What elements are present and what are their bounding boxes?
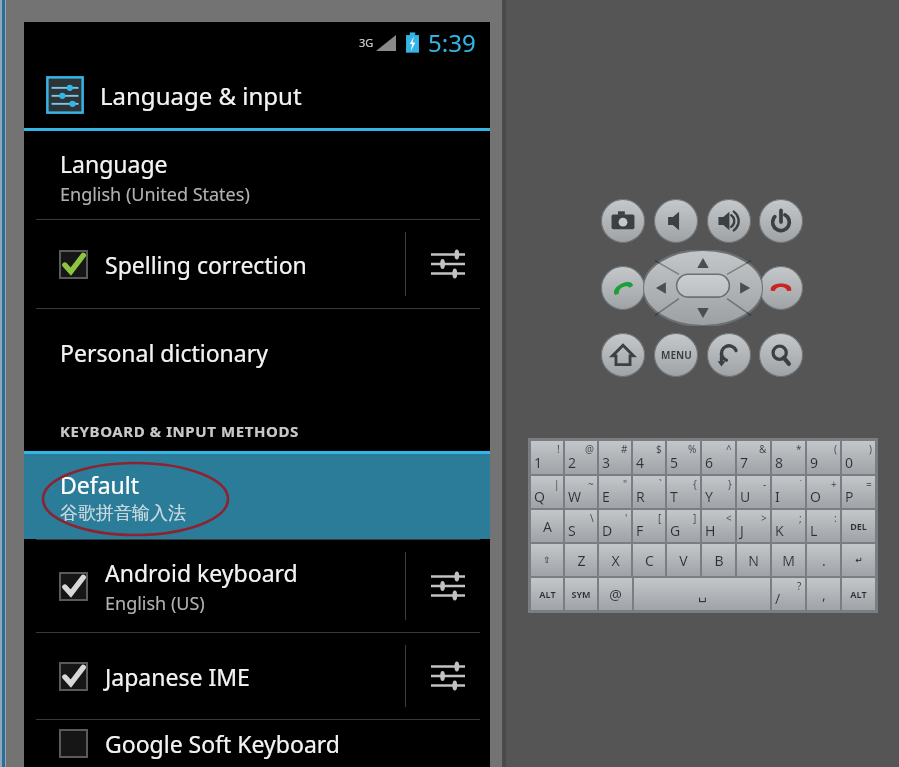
button[interactable]: Japanese IME — [24, 633, 490, 719]
button[interactable]: 9 — [807, 441, 840, 474]
staticText: ' — [625, 511, 628, 525]
button[interactable]: N — [737, 544, 770, 576]
staticText: | — [554, 477, 560, 491]
button[interactable]: D-pad — [643, 250, 763, 326]
button[interactable]: 4 — [633, 441, 665, 474]
button[interactable]: K — [772, 510, 805, 542]
staticText: X — [611, 551, 620, 570]
button[interactable]: , — [807, 578, 840, 610]
button[interactable]: U — [737, 476, 770, 508]
button[interactable]: Volume down — [654, 199, 698, 243]
button[interactable]: SYM — [565, 578, 597, 610]
button[interactable]: M — [772, 544, 805, 576]
staticText: DEL — [850, 520, 867, 532]
button[interactable]: 2 — [565, 441, 597, 474]
button[interactable]: 8 — [772, 441, 805, 474]
staticText: O — [810, 487, 821, 506]
button[interactable]: Settings for Japanese IME — [406, 633, 490, 719]
button[interactable]: T — [667, 476, 700, 508]
button[interactable]: 0 — [842, 441, 875, 474]
staticText: \ — [590, 511, 594, 525]
button[interactable]: E — [599, 476, 631, 508]
button[interactable]: Camera — [601, 199, 645, 243]
staticText: } — [728, 477, 732, 491]
button[interactable]: . — [807, 544, 840, 576]
button[interactable]: End call — [759, 266, 803, 310]
staticText: ˙ — [800, 477, 802, 491]
staticText: S — [568, 521, 576, 540]
staticText: E — [602, 487, 610, 506]
button[interactable]: D — [599, 510, 631, 542]
button[interactable]: Volume up — [707, 199, 751, 243]
button[interactable]: Back — [707, 333, 751, 377]
button[interactable]: W — [565, 476, 597, 508]
staticText: : — [834, 511, 837, 525]
staticText: 谷歌拼音输入法 — [60, 502, 186, 525]
staticText: ␣ — [698, 586, 707, 602]
button[interactable]: G — [667, 510, 700, 542]
button[interactable]: Google Soft Keyboard — [24, 720, 490, 767]
button[interactable]: I — [772, 476, 805, 508]
button[interactable]: Power — [759, 199, 803, 243]
staticText: @ — [609, 585, 622, 604]
button[interactable]: 3 — [599, 441, 631, 474]
staticText: # — [621, 442, 628, 456]
staticText: ) — [869, 442, 872, 456]
staticText: L — [810, 521, 818, 540]
staticText: ] — [693, 511, 697, 525]
staticText: KEYBOARD & INPUT METHODS — [60, 421, 299, 441]
button[interactable]: 1 — [531, 441, 563, 474]
button[interactable]: F — [633, 510, 665, 542]
button[interactable]: C — [633, 544, 665, 576]
button[interactable]: ⇧ — [531, 544, 563, 576]
staticText: J — [740, 521, 744, 540]
button[interactable]: L — [807, 510, 840, 542]
staticText: Spelling correction — [105, 249, 307, 280]
staticText: H — [705, 521, 716, 540]
button[interactable]: S — [565, 510, 597, 542]
staticText: ⇧ — [543, 555, 551, 565]
button[interactable]: ␣ — [634, 578, 770, 610]
button[interactable]: Q — [531, 476, 563, 508]
staticText: < — [726, 511, 732, 525]
button[interactable]: Spelling correction — [24, 220, 490, 308]
button[interactable]: B — [702, 544, 735, 576]
button[interactable]: ALT — [842, 578, 875, 610]
button[interactable]: Search — [759, 333, 803, 377]
button[interactable]: @ — [599, 578, 632, 610]
button[interactable]: X — [599, 544, 631, 576]
button[interactable]: Settings for Android keyboard — [406, 540, 490, 632]
staticText: K — [775, 521, 784, 540]
button[interactable]: Call — [601, 266, 645, 310]
button[interactable]: ALT — [531, 578, 563, 610]
button[interactable]: Default — [24, 454, 490, 539]
staticText: F — [636, 521, 644, 540]
button[interactable]: DEL — [842, 510, 875, 542]
staticText: Android keyboard — [105, 557, 298, 588]
staticText: English (US) — [105, 591, 205, 616]
button[interactable]: Home — [601, 333, 645, 377]
button[interactable]: A — [531, 510, 563, 542]
button[interactable]: Y — [702, 476, 735, 508]
staticText: [ — [658, 511, 662, 525]
button[interactable]: ↵ — [842, 544, 875, 576]
staticText: M — [782, 551, 795, 570]
button[interactable]: R — [633, 476, 665, 508]
button[interactable]: Z — [565, 544, 597, 576]
button[interactable]: Language — [24, 135, 490, 219]
button[interactable]: 6 — [702, 441, 735, 474]
staticText: B — [714, 551, 724, 570]
button[interactable]: Settings for Spelling correction — [406, 220, 490, 308]
button[interactable]: O — [807, 476, 840, 508]
button[interactable]: 7 — [737, 441, 770, 474]
button[interactable]: 5 — [667, 441, 700, 474]
staticText: 4 — [636, 453, 645, 472]
button[interactable]: Personal dictionary — [24, 309, 490, 395]
button[interactable]: H — [702, 510, 735, 542]
button[interactable]: Android keyboard — [24, 540, 490, 632]
button[interactable]: / — [772, 578, 805, 610]
button[interactable]: Menu — [654, 333, 698, 377]
button[interactable]: P — [842, 476, 875, 508]
button[interactable]: J — [737, 510, 770, 542]
button[interactable]: V — [667, 544, 700, 576]
